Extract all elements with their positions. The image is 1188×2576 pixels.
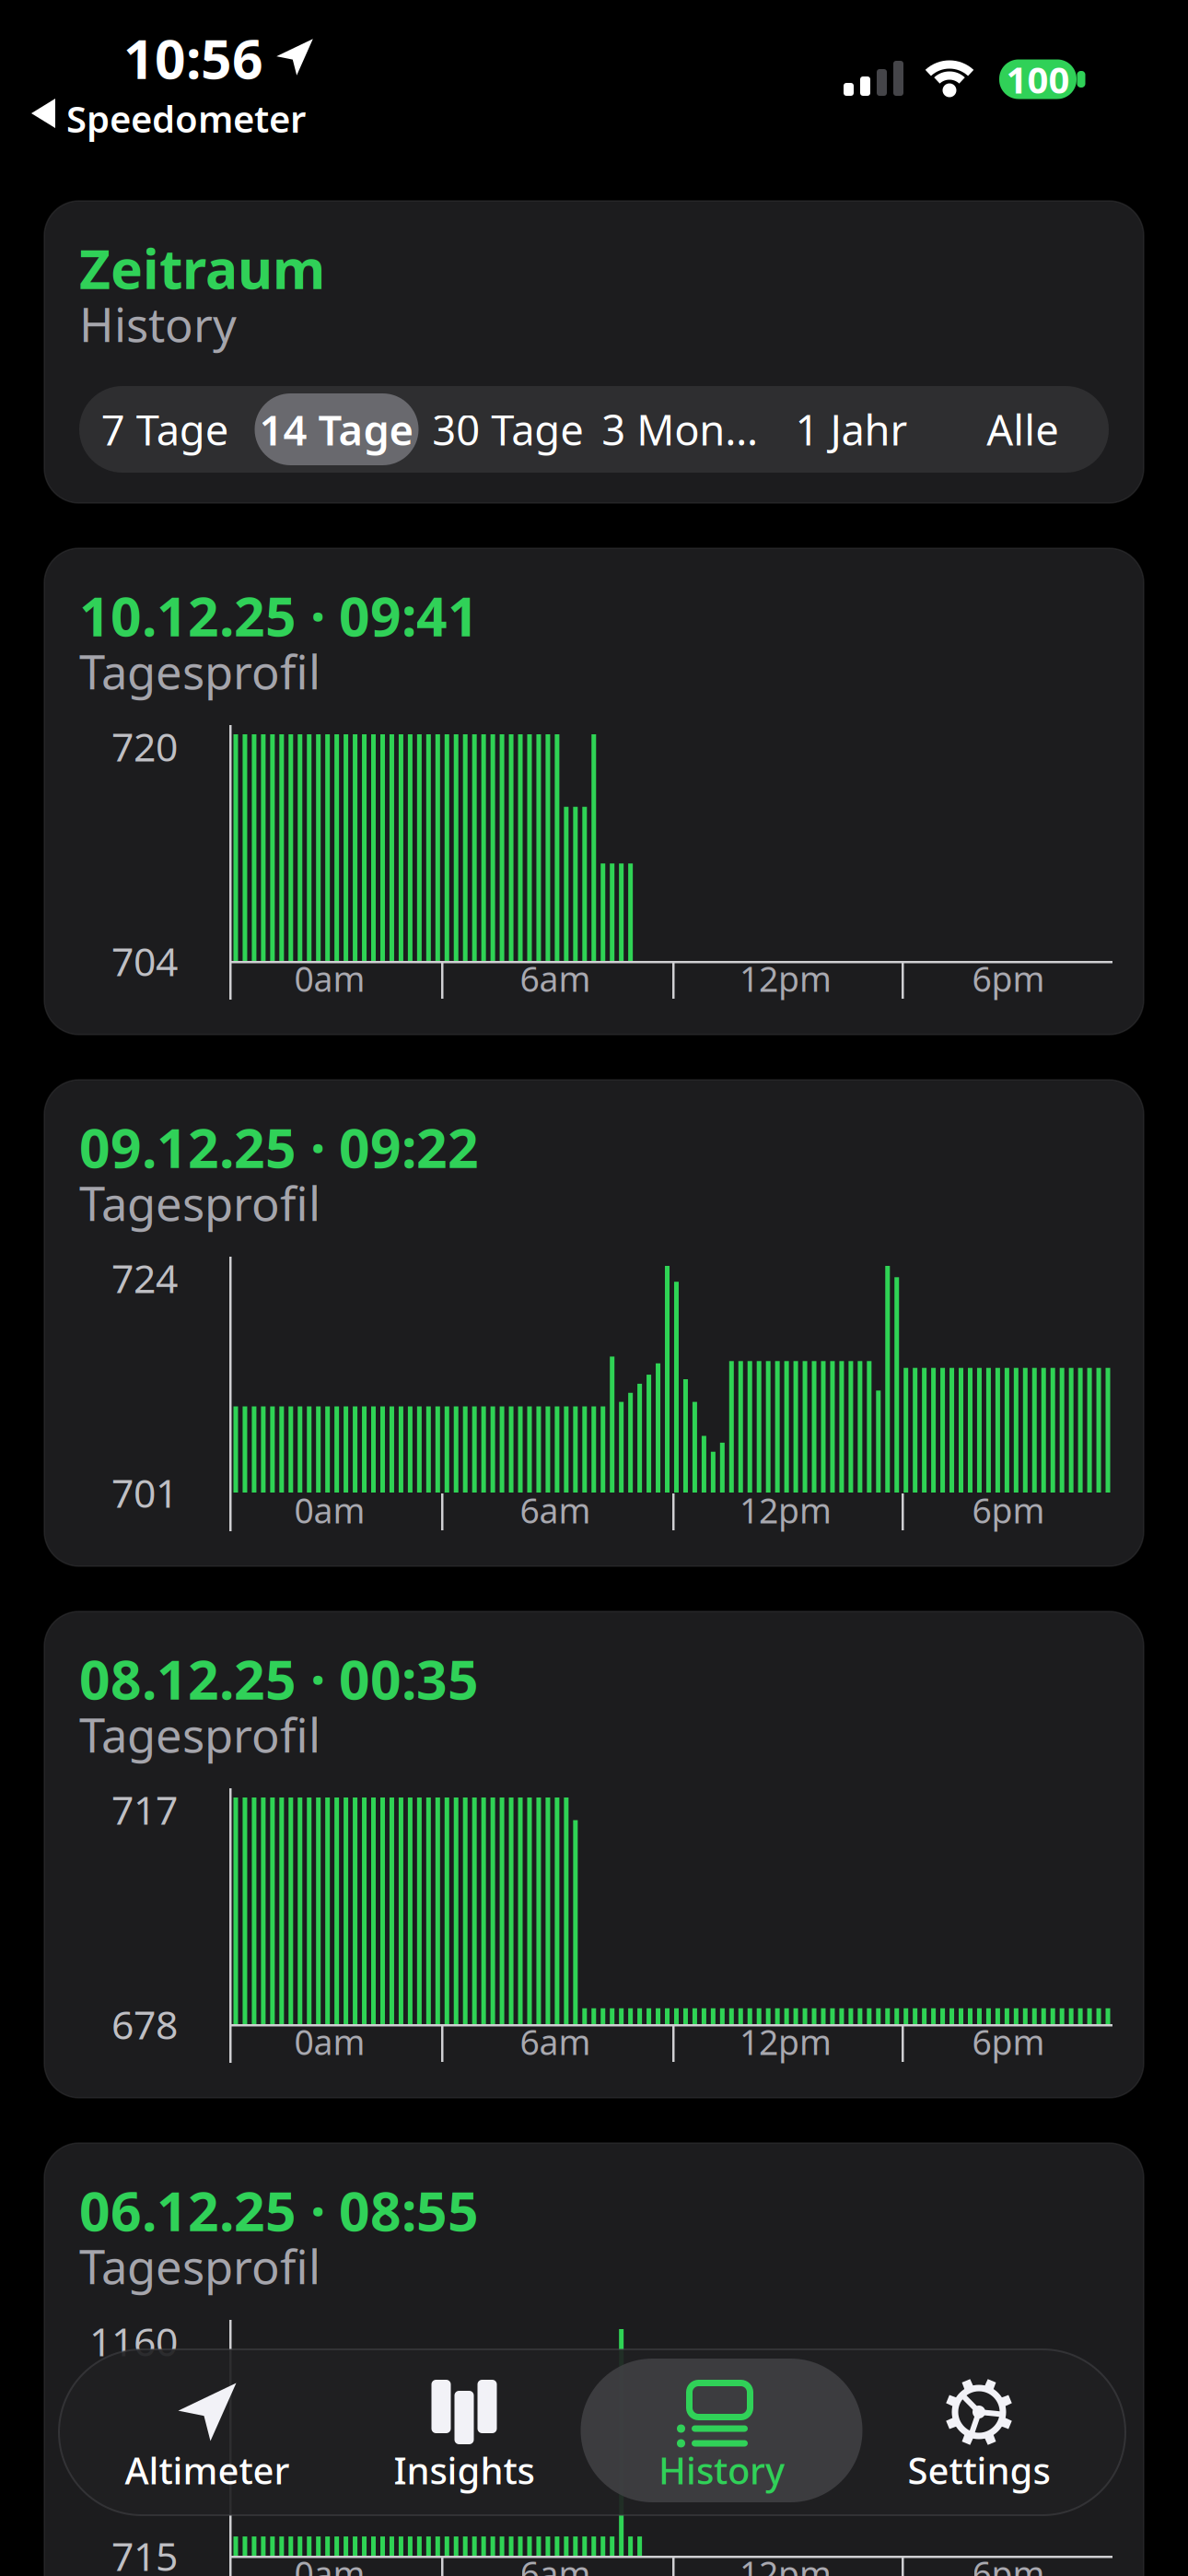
staticText: 678 [111,1998,178,2050]
staticText: 6am [520,956,591,1001]
staticText: Tagesprofil [79,1704,320,1766]
staticText: History [658,2446,785,2494]
staticText: Tagesprofil [79,2235,320,2297]
staticText: 1160 [89,2315,178,2367]
staticText: 6am [520,2019,591,2064]
staticText: 701 [111,1466,178,1519]
staticText: 14 Tage [259,402,414,457]
staticText: Zeitraum [79,232,325,304]
staticText: 0am [294,2550,365,2576]
button[interactable]: 3 Mon… [594,386,766,473]
staticText: 6pm [972,956,1045,1001]
button[interactable]: Altimeter [74,2349,341,2515]
staticText: 0am [294,2019,365,2064]
staticText: 6pm [972,2019,1045,2064]
staticText: 6pm [972,1487,1045,1533]
staticText: 12pm [740,956,832,1001]
staticText: 12pm [740,1487,832,1533]
button[interactable]: History [588,2349,855,2515]
staticText: 1 Jahr [795,402,908,457]
staticText: Speedometer [66,94,306,143]
staticText: 10:56 [123,22,263,94]
staticText: Altimeter [125,2446,290,2494]
staticText: 704 [111,935,178,987]
button[interactable]: Insights [331,2349,598,2515]
button[interactable]: Settings [845,2349,1112,2515]
staticText: Tagesprofil [79,1172,320,1234]
button[interactable]: 14 Tage [251,386,422,473]
staticText: 08.12.25 · 00:35 [79,1643,479,1714]
staticText: 12pm [740,2550,832,2576]
button[interactable]: 30 Tage [422,386,594,473]
button[interactable]: 7 Tage [79,386,251,473]
staticText: 12pm [740,2019,832,2064]
staticText: 6am [520,1487,591,1533]
staticText: 720 [111,720,178,772]
staticText: 717 [111,1783,178,1836]
staticText: 100 [1006,55,1070,104]
staticText: 30 Tage [432,402,584,457]
staticText: 3 Mon… [602,402,758,457]
staticText: Insights [394,2446,535,2494]
staticText: 724 [111,1252,178,1304]
staticText: 7 Tage [101,402,229,457]
button[interactable]: 1 Jahr [766,386,937,473]
staticText: 0am [294,956,365,1001]
staticText: Alle [987,402,1059,457]
staticText: Settings [908,2446,1050,2494]
button[interactable]: Speedometer [9,88,285,139]
staticText: 6pm [972,2550,1045,2576]
staticText: 6am [520,2550,591,2576]
staticText: 715 [111,2530,178,2576]
button[interactable]: Alle [937,386,1109,473]
staticText: 06.12.25 · 08:55 [79,2174,479,2246]
staticText: History [79,293,237,355]
staticText: 10.12.25 · 09:41 [79,580,479,651]
staticText: 09.12.25 · 09:22 [79,1111,479,1183]
staticText: Tagesprofil [79,640,320,702]
staticText: 0am [294,1487,365,1533]
